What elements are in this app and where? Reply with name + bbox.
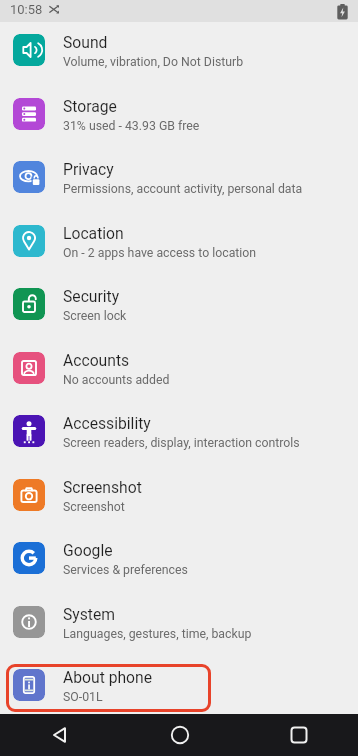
button[interactable]: Security (0, 276, 358, 340)
staticText: Screen lock (63, 309, 127, 323)
staticText: Location (63, 224, 124, 242)
button[interactable]: System (0, 594, 358, 657)
button[interactable] (120, 714, 239, 756)
staticText: Accessibility (63, 414, 151, 432)
staticText: About phone (63, 668, 153, 686)
staticText: Permissions, account activity, personal … (63, 182, 303, 196)
staticText: Languages, gestures, time, backup (63, 627, 252, 641)
staticText: Volume, vibration, Do Not Disturb (63, 55, 244, 69)
staticText: Screenshot (63, 500, 125, 514)
staticText: Privacy (63, 160, 114, 178)
button[interactable]: About phone (0, 657, 358, 714)
staticText: Services & preferences (63, 563, 188, 577)
button[interactable]: Sound (0, 22, 358, 86)
staticText: 10:58 (10, 2, 43, 17)
button[interactable]: Accounts (0, 340, 358, 403)
staticText: Screen readers, display, interaction con… (63, 436, 300, 450)
staticText: On - 2 apps have access to location (63, 246, 257, 260)
button[interactable]: Screenshot (0, 467, 358, 530)
staticText: Accounts (63, 351, 130, 369)
staticText: Storage (63, 97, 117, 115)
staticText: Google (63, 541, 113, 559)
button[interactable]: Privacy (0, 149, 358, 213)
staticText: System (63, 605, 116, 623)
button[interactable]: Location (0, 213, 358, 276)
staticText: No accounts added (63, 373, 170, 387)
staticText: Screenshot (63, 478, 142, 496)
button[interactable] (239, 714, 358, 756)
button[interactable]: Google (0, 530, 358, 594)
staticText: SO-01L (63, 690, 103, 704)
button[interactable]: Accessibility (0, 403, 358, 467)
button[interactable] (0, 714, 120, 756)
staticText: Security (63, 287, 120, 305)
staticText: 31% used - 43.93 GB free (63, 119, 200, 133)
button[interactable]: Storage (0, 86, 358, 149)
staticText: Sound (63, 33, 108, 51)
